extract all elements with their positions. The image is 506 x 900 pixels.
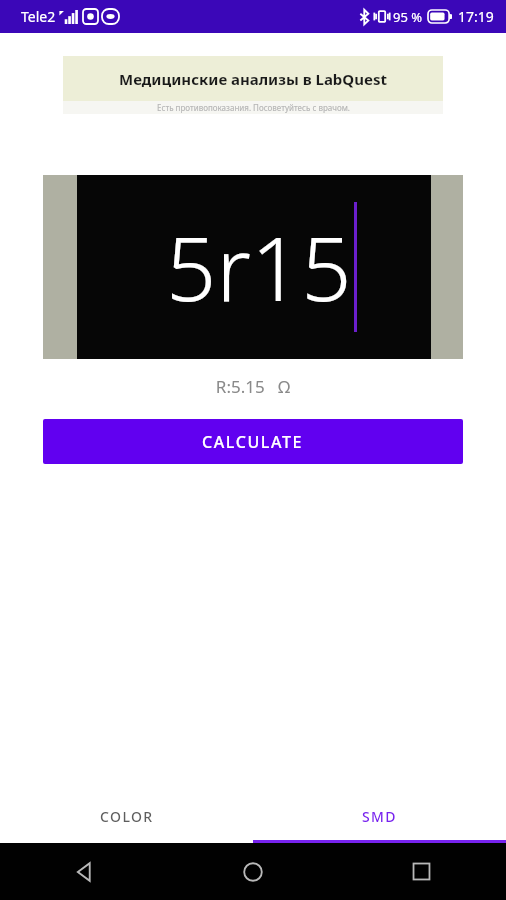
staticText: 17:19 (458, 7, 494, 26)
staticText: CALCULATE (202, 431, 304, 453)
staticText: Медицинские анализы в LabQuest (119, 69, 387, 89)
staticText: SMD (362, 807, 397, 826)
staticText: 95 % (393, 8, 423, 26)
button[interactable]: Home (168, 843, 337, 900)
staticText: R:5.15 Ω (0, 375, 506, 398)
staticText: COLOR (100, 807, 154, 826)
staticText: 5r15 (166, 207, 352, 327)
button[interactable]: SMD (253, 793, 506, 840)
button[interactable]: CALCULATE (43, 419, 463, 464)
button[interactable]: SMD resistor code input (43, 175, 463, 359)
staticText: Есть противопоказания. Посоветуйтесь с в… (157, 102, 350, 113)
button[interactable]: Медицинские анализы в LabQuest (63, 56, 443, 114)
button[interactable]: COLOR (0, 793, 253, 840)
button[interactable]: Back (0, 843, 168, 900)
staticText: Tele2 (21, 7, 56, 26)
button[interactable]: Recent apps (337, 843, 506, 900)
